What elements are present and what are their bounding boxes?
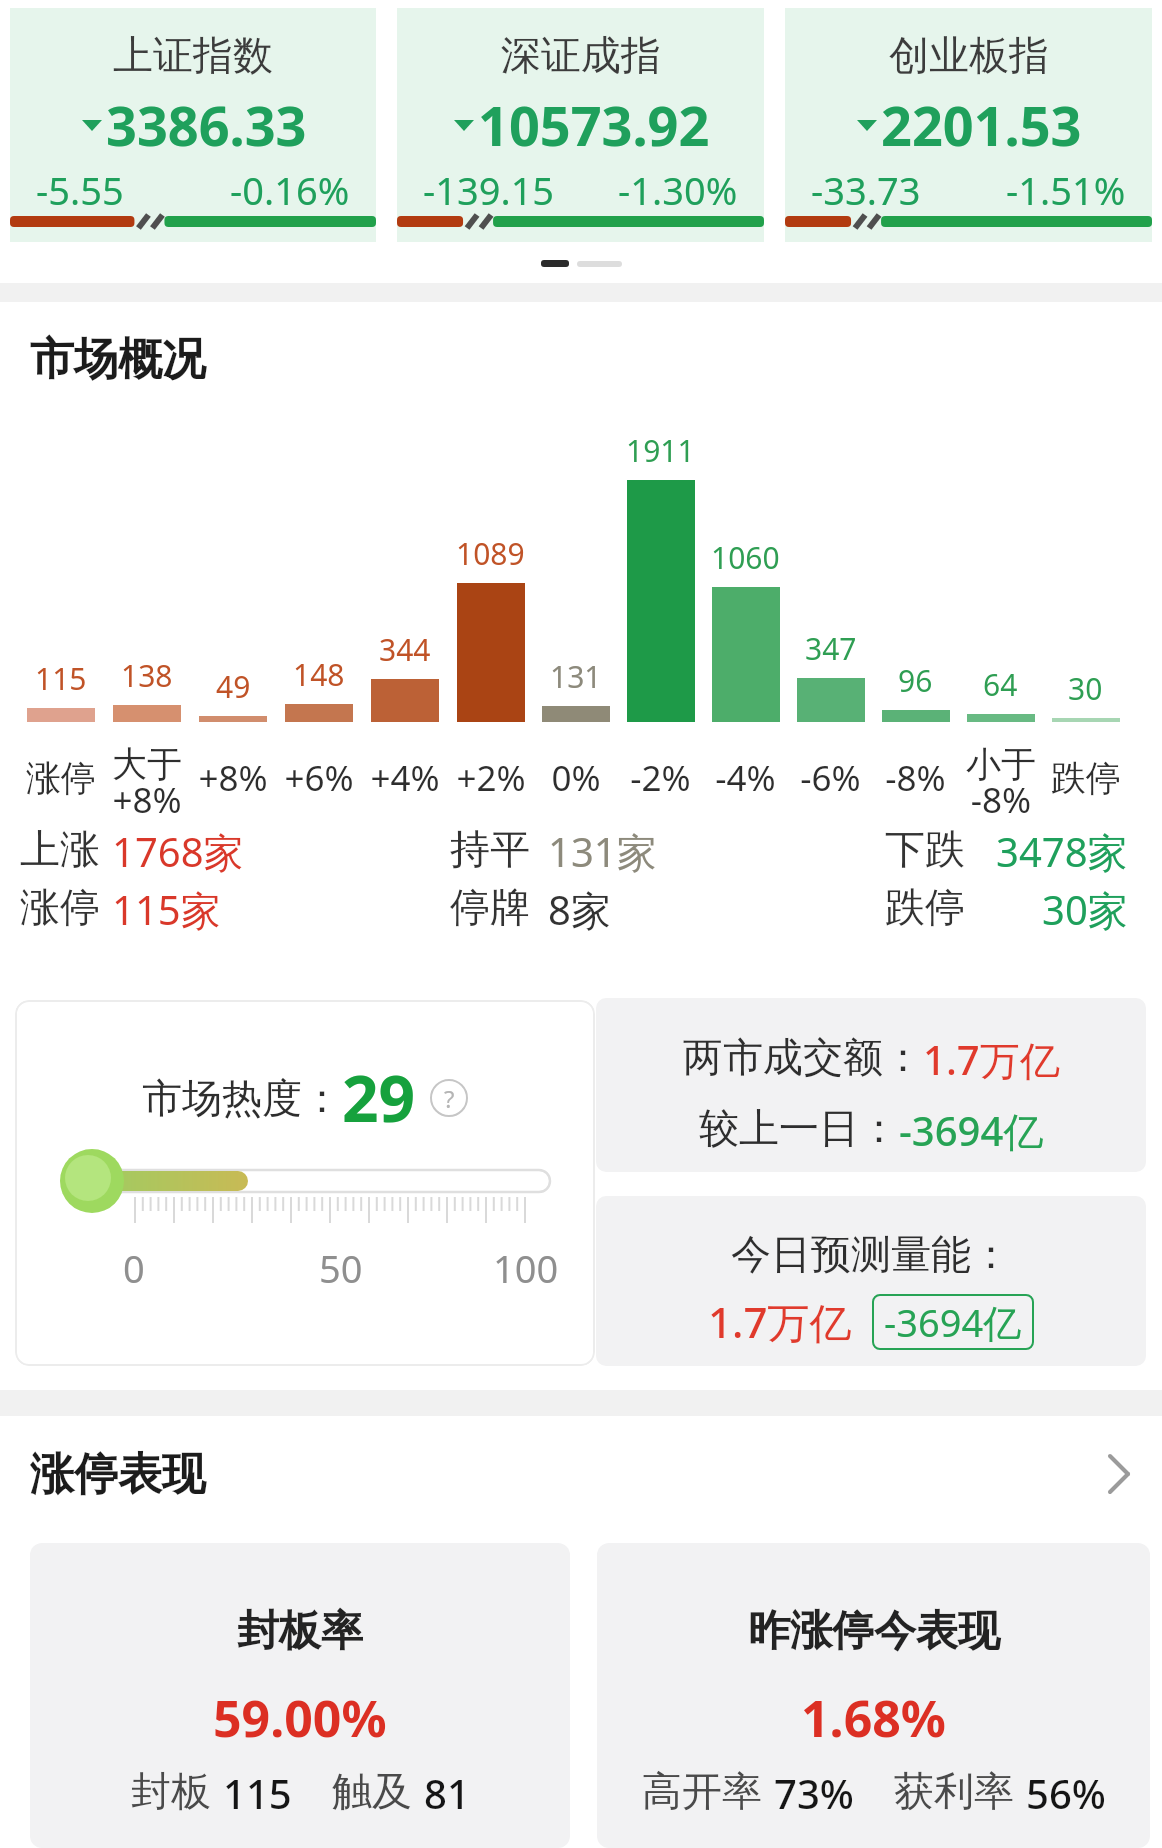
staticText: 1.7万亿: [923, 1032, 1060, 1087]
staticText: 下跌: [885, 824, 965, 874]
staticText: 29: [342, 1054, 416, 1141]
staticText: 昨涨停今表现: [748, 1605, 1000, 1658]
staticText: 1911: [626, 430, 695, 471]
staticText: 大于 +8%: [112, 742, 182, 814]
staticText: 涨停: [20, 882, 100, 932]
staticText: 封板: [131, 1766, 211, 1816]
staticText: 封板率: [237, 1605, 363, 1658]
staticText: 30家: [1042, 882, 1128, 934]
button[interactable]: 两市成交额：: [596, 998, 1146, 1172]
staticText: 138: [121, 655, 173, 696]
staticText: -4%: [715, 754, 776, 802]
staticText: -1.30%: [618, 164, 738, 216]
staticText: 持平: [450, 824, 530, 874]
button[interactable]: 深证成指: [397, 8, 764, 242]
staticText: -139.15: [423, 164, 555, 216]
staticText: -3694亿: [884, 1296, 1022, 1348]
staticText: 50: [319, 1242, 363, 1294]
button[interactable]: 上证指数: [10, 8, 376, 242]
staticText: 3386.33: [106, 88, 307, 162]
staticText: 131家: [548, 824, 657, 876]
staticText: 347: [805, 628, 857, 669]
staticText: 73%: [774, 1766, 854, 1820]
staticText: ?: [444, 1082, 455, 1115]
staticText: 市场热度：: [142, 1073, 342, 1123]
staticText: 49: [216, 666, 251, 707]
staticText: 跌停: [1051, 756, 1121, 800]
staticText: 涨停: [26, 756, 96, 800]
staticText: 触及: [332, 1766, 412, 1816]
staticText: 跌停: [885, 882, 965, 932]
staticText: +8%: [198, 754, 268, 802]
staticText: 2201.53: [881, 88, 1082, 162]
staticText: 100: [493, 1242, 559, 1294]
staticText: 1060: [711, 537, 780, 578]
staticText: 59.00%: [213, 1684, 387, 1752]
staticText: 115: [223, 1766, 292, 1820]
staticText: 96: [898, 660, 933, 701]
staticText: -8%: [885, 754, 946, 802]
staticText: 涨停表现: [30, 1447, 206, 1502]
staticText: 148: [293, 654, 345, 695]
staticText: 3478家: [996, 824, 1128, 876]
staticText: 停牌: [450, 882, 530, 932]
staticText: +6%: [284, 754, 354, 802]
staticText: -5.55: [36, 164, 124, 216]
staticText: -3694亿: [899, 1103, 1044, 1158]
staticText: 较上一日：: [699, 1103, 899, 1153]
staticText: -1.51%: [1006, 164, 1126, 216]
staticText: +4%: [370, 754, 440, 802]
staticText: 30: [1068, 668, 1103, 709]
staticText: 1.7万亿: [708, 1293, 852, 1350]
button[interactable]: 封板率: [30, 1543, 570, 1848]
staticText: 64: [983, 664, 1018, 705]
button[interactable]: 昨涨停今表现: [597, 1543, 1150, 1848]
staticText: 81: [424, 1766, 470, 1820]
staticText: -2%: [630, 754, 691, 802]
staticText: -0.16%: [230, 164, 350, 216]
staticText: 131: [550, 656, 602, 697]
staticText: 1768家: [112, 824, 244, 876]
staticText: 1089: [456, 533, 525, 574]
staticText: 高开率: [642, 1766, 762, 1816]
staticText: +2%: [456, 754, 526, 802]
button[interactable]: 今日预测量能：: [596, 1196, 1146, 1366]
staticText: 0%: [551, 754, 601, 802]
staticText: 市场概况: [30, 332, 206, 387]
staticText: 344: [379, 629, 431, 670]
staticText: 创业板指: [889, 30, 1049, 80]
staticText: 115: [35, 658, 87, 699]
button[interactable]: 市场热度：: [15, 1000, 595, 1366]
staticText: 两市成交额：: [683, 1032, 923, 1082]
staticText: -6%: [800, 754, 861, 802]
staticText: 小于 -8%: [966, 742, 1036, 814]
staticText: 上证指数: [113, 30, 273, 80]
staticText: 8家: [548, 882, 611, 934]
staticText: 深证成指: [501, 30, 661, 80]
staticText: 0: [123, 1242, 145, 1294]
staticText: 今日预测量能：: [731, 1229, 1011, 1279]
staticText: 115家: [112, 882, 221, 934]
staticText: -33.73: [811, 164, 921, 216]
button[interactable]: 创业板指: [785, 8, 1152, 242]
staticText: 1.68%: [801, 1684, 946, 1752]
staticText: 56%: [1026, 1766, 1106, 1820]
button[interactable]: 涨停表现: [30, 1446, 1132, 1502]
staticText: 上涨: [20, 824, 100, 874]
staticText: 获利率: [894, 1766, 1014, 1816]
staticText: 10573.92: [478, 88, 710, 162]
